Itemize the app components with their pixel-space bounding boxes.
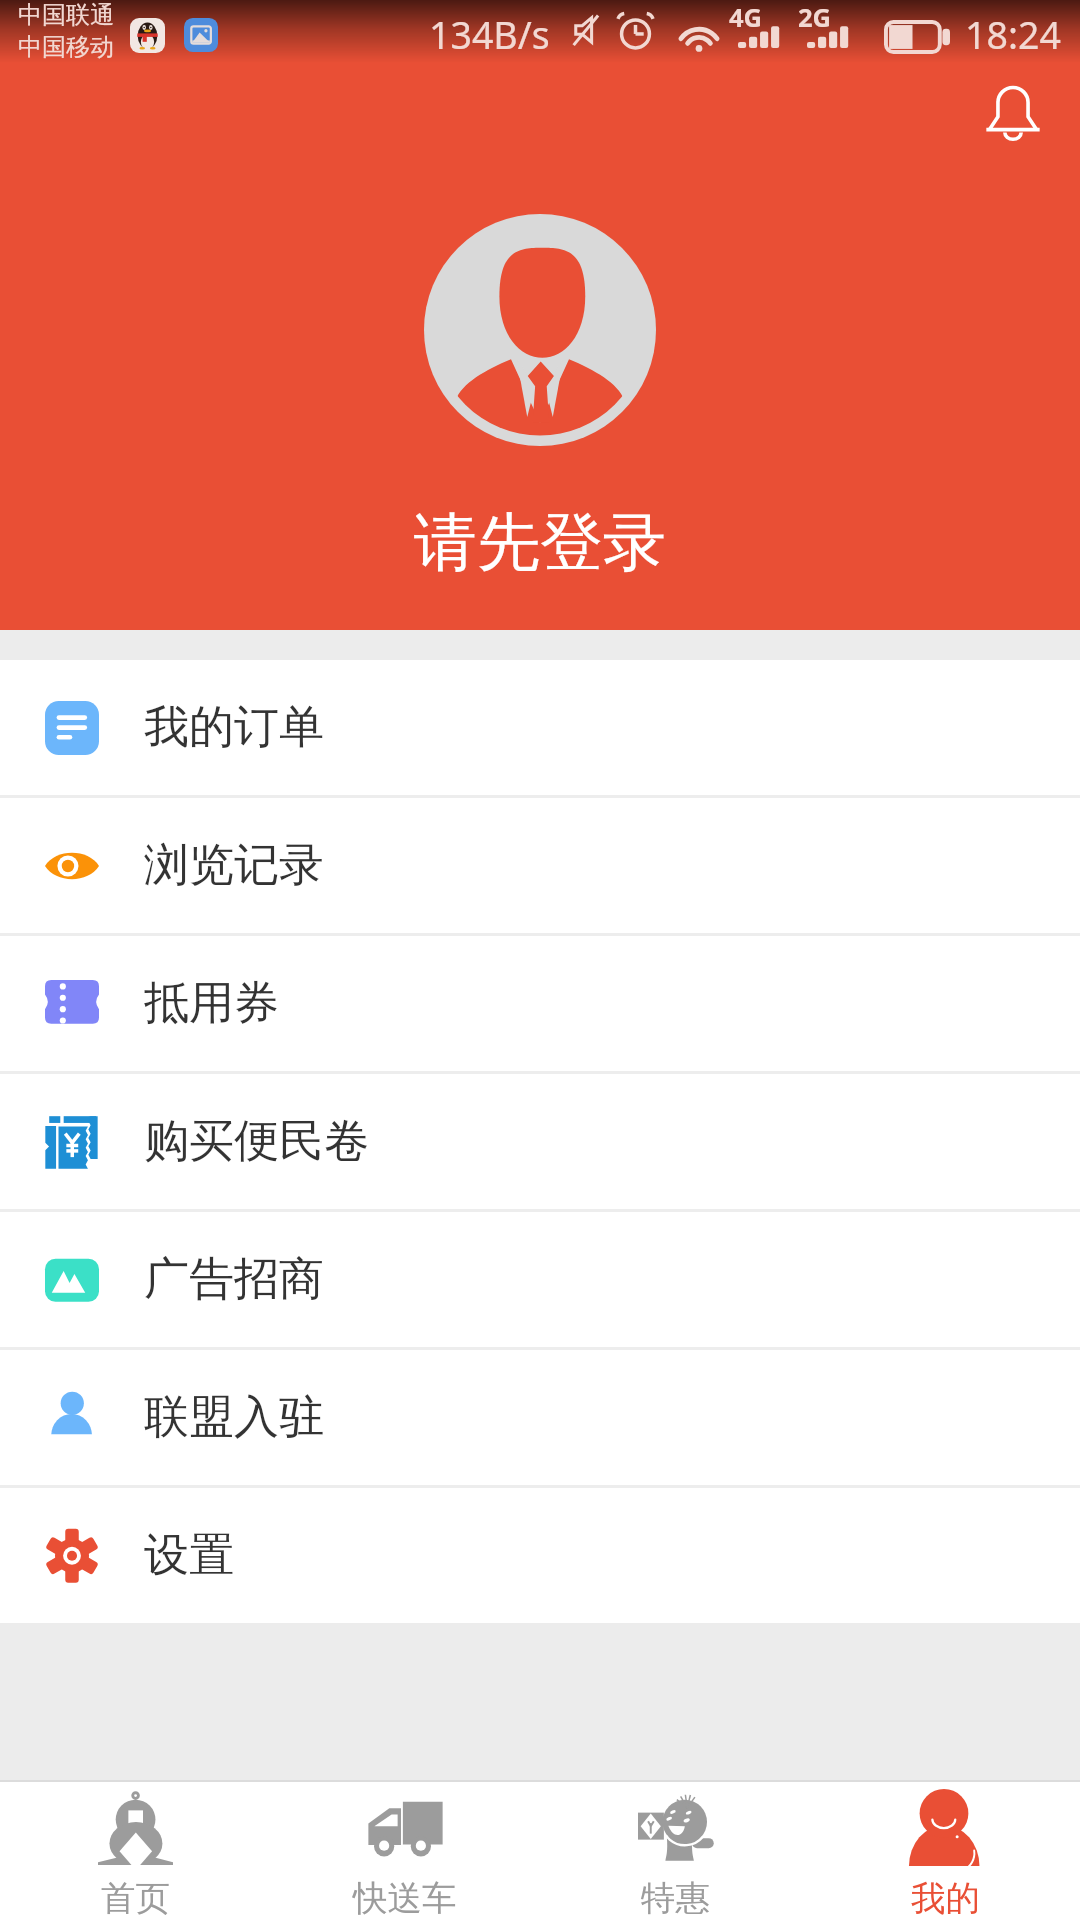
- button[interactable]: 联盟入驻: [0, 1350, 1080, 1485]
- staticText: 中国联通: [18, 0, 114, 30]
- staticText: 请先登录: [414, 503, 666, 582]
- staticText: 首页: [101, 1877, 170, 1920]
- staticText: 特惠: [641, 1877, 710, 1920]
- button[interactable]: Notifications: [970, 69, 1056, 155]
- staticText: 快送车: [353, 1877, 457, 1920]
- button[interactable]: 首页: [0, 1782, 270, 1920]
- staticText: 联盟入驻: [144, 1389, 324, 1446]
- staticText: 18:24: [965, 9, 1061, 60]
- staticText: 中国移动: [18, 32, 114, 62]
- button[interactable]: 广告招商: [0, 1212, 1080, 1347]
- staticText: 浏览记录: [144, 837, 324, 894]
- staticText: 抵用券: [144, 975, 279, 1032]
- button[interactable]: 抵用券: [0, 936, 1080, 1071]
- staticText: 2G: [798, 0, 832, 35]
- button[interactable]: 设置: [0, 1488, 1080, 1623]
- staticText: 4G: [729, 0, 763, 35]
- staticText: 购买便民卷: [144, 1113, 369, 1170]
- staticText: 广告招商: [144, 1251, 324, 1308]
- button[interactable]: 浏览记录: [0, 798, 1080, 933]
- button[interactable]: 我的: [810, 1782, 1080, 1920]
- button[interactable]: 快送车: [270, 1782, 540, 1920]
- staticText: 我的: [911, 1877, 980, 1920]
- button[interactable]: 特惠: [540, 1782, 810, 1920]
- staticText: 134B/s: [429, 9, 550, 60]
- staticText: 设置: [144, 1527, 234, 1584]
- button[interactable]: 购买便民卷: [0, 1074, 1080, 1209]
- button[interactable]: 我的订单: [0, 660, 1080, 795]
- staticText: 我的订单: [144, 699, 324, 756]
